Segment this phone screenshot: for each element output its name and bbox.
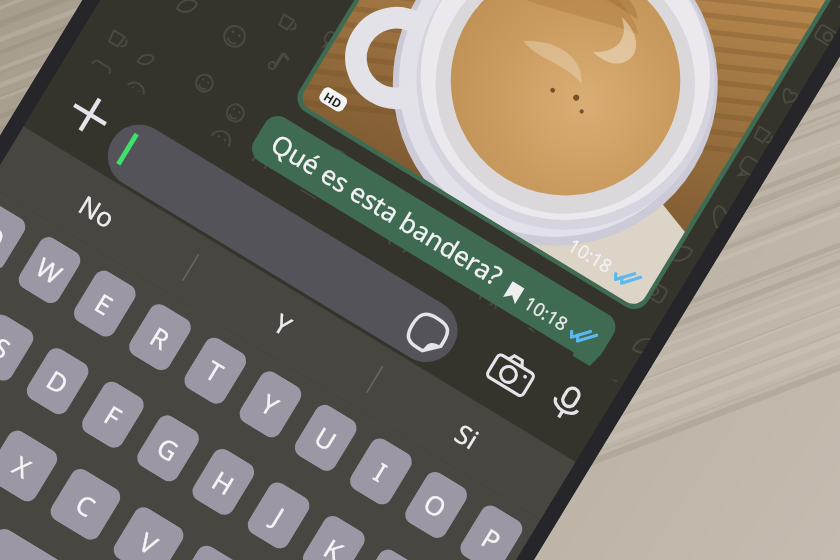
button[interactable]: P [456,501,526,560]
staticText: W [29,249,69,292]
button[interactable]: Stickers [396,301,459,364]
button[interactable]: H [188,445,258,519]
button[interactable]: Attach [52,76,128,153]
button[interactable]: Camera [473,334,549,410]
staticText: G [151,429,186,470]
staticText: HD [321,87,346,111]
button[interactable]: Y [174,239,392,408]
staticText: S [0,329,18,367]
staticText: No [72,187,122,236]
button[interactable]: K [299,512,369,560]
staticText: O [417,485,454,526]
staticText: D [40,362,76,402]
staticText: F [98,397,128,434]
staticText: E [89,285,120,323]
button[interactable]: Voice message [529,364,605,440]
button[interactable]: L [354,546,424,560]
staticText: Si [449,416,485,457]
staticText: J [266,499,291,533]
button[interactable]: E [70,267,140,340]
staticText: U [308,419,344,459]
button[interactable]: F [78,378,148,452]
button[interactable]: No [0,126,208,296]
button[interactable]: U [291,401,361,475]
staticText: 10:18 [520,290,573,336]
staticText: T [199,352,231,390]
button[interactable]: HD [297,0,840,309]
staticText: I [367,454,394,489]
button[interactable]: Space [0,525,232,560]
button[interactable]: Stickers [96,113,469,374]
staticText: Q [0,216,12,258]
staticText: P [475,520,508,559]
button[interactable]: R [125,300,195,374]
staticText: R [144,319,177,358]
staticText: 10:18 [564,232,617,278]
button[interactable]: Y [236,367,305,441]
staticText: C [69,486,102,525]
staticText: Y [254,386,286,424]
button[interactable]: Q [0,199,29,273]
button[interactable]: J [244,478,313,552]
button[interactable]: B [173,542,250,560]
button[interactable]: Si [358,351,576,520]
button[interactable]: T [180,334,250,408]
button[interactable]: O [401,468,471,542]
button[interactable]: I [346,434,416,508]
staticText: Qué es esta bandera? [265,126,509,293]
button[interactable]: V [110,503,187,560]
staticText: Y [267,305,299,344]
staticText: K [318,530,350,560]
staticText: H [206,463,241,503]
button[interactable]: D [23,344,92,418]
button[interactable]: Qué es esta bandera? [265,126,605,352]
button[interactable]: X [0,427,61,505]
staticText: X [6,447,38,486]
staticText: V [132,524,165,560]
button[interactable]: C [47,465,124,544]
button[interactable]: G [133,411,203,485]
button[interactable]: S [0,311,37,384]
button[interactable]: W [15,233,84,307]
